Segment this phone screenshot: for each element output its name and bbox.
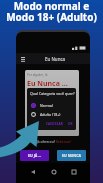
button[interactable]: Adulto (18+) [27,110,76,119]
staticText: Normal [40,103,53,108]
staticText: Qual Categoria você quer? [30,91,75,96]
staticText: Adulto (18+) [40,112,61,117]
button[interactable]: CANCELAR [45,122,64,126]
staticText: Eu Nunca ... [27,79,68,89]
staticText: Bebericar! [56,140,72,144]
staticText: Modo normal e Modo 18+ (Adulto) [0,0,103,24]
button[interactable]: Back [28,167,37,176]
button[interactable]: EU NUNCA [57,150,86,161]
button[interactable]: EU JÁ ... [20,150,49,161]
staticText: Por alguém, lá [27,73,48,77]
staticText: CANCELAR [46,122,63,126]
button[interactable]: Recents [69,167,78,176]
button[interactable]: Home [49,167,58,176]
staticText: Já ofereceu? [37,140,56,144]
staticText: EU JÁ ... [28,153,42,158]
button[interactable]: Normal [27,101,76,110]
staticText: EU NUNCA [62,153,82,158]
staticText: Eu Nunca [45,56,66,62]
button[interactable]: Menu [19,55,26,62]
button[interactable]: OK [67,122,74,126]
staticText: OK [68,122,73,126]
